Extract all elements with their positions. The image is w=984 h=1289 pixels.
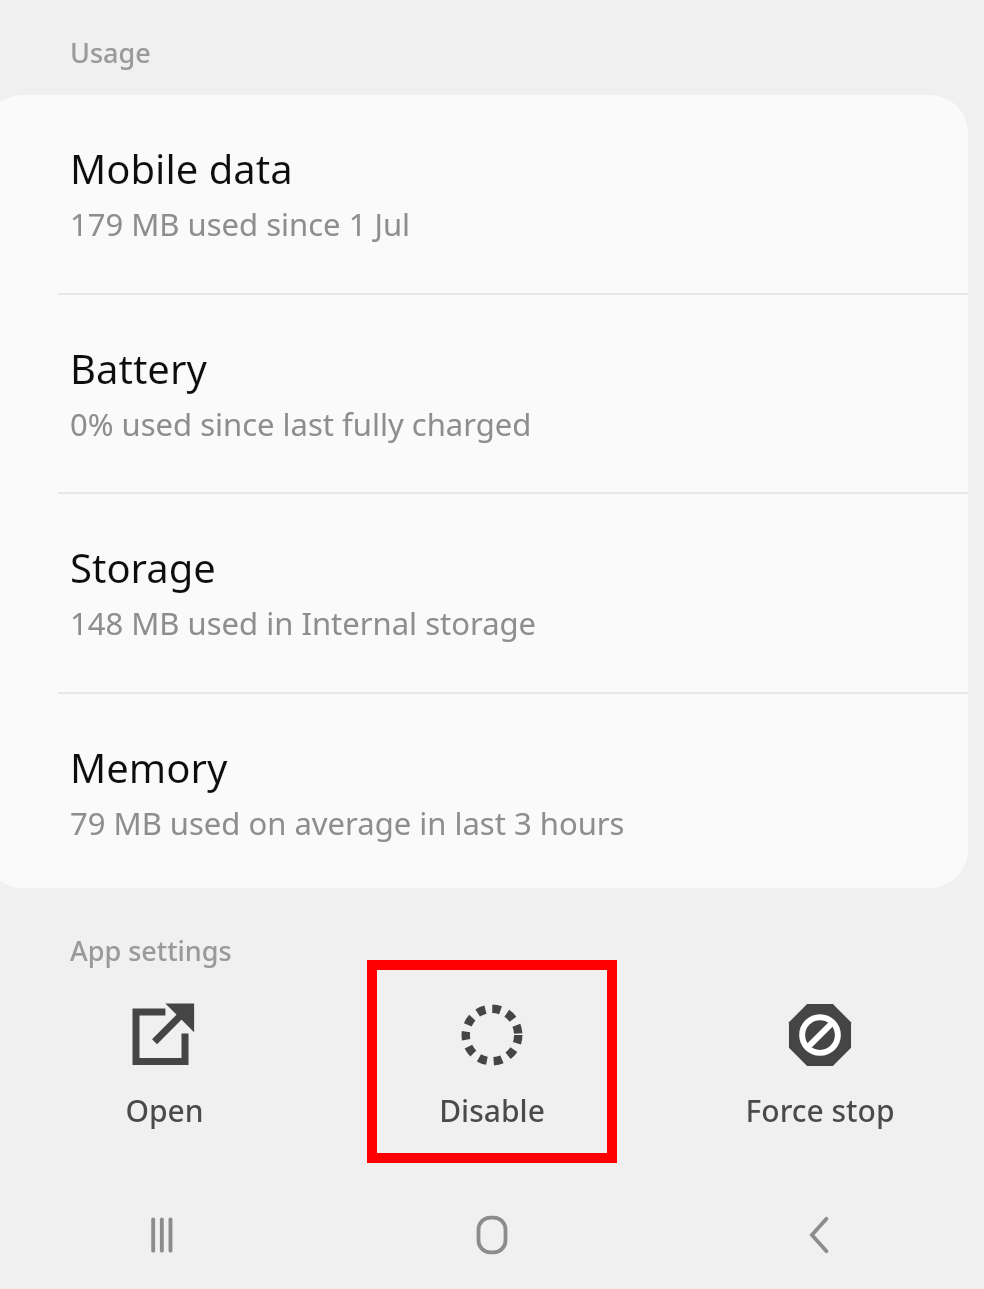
staticText: Memory	[70, 740, 228, 794]
staticText: Force stop	[745, 1090, 895, 1131]
staticText: Disable	[439, 1090, 545, 1131]
button[interactable]: Storage	[0, 540, 968, 692]
staticText: 79 MB used on average in last 3 hours	[70, 802, 625, 844]
button[interactable]: Back	[656, 1180, 984, 1289]
button[interactable]: Open	[0, 960, 328, 1163]
staticText: 148 MB used in Internal storage	[70, 602, 537, 644]
staticText: Mobile data	[70, 141, 293, 195]
other: Open	[129, 1000, 199, 1070]
staticText: Battery	[70, 341, 207, 395]
staticText: 0% used since last fully charged	[70, 403, 532, 445]
staticText: 179 MB used since 1 Jul	[70, 203, 411, 245]
button[interactable]: Home	[328, 1180, 656, 1289]
button[interactable]: Battery	[0, 341, 968, 493]
button[interactable]: Mobile data	[0, 141, 968, 293]
button[interactable]: Force stop	[656, 960, 984, 1163]
button[interactable]: Disable	[328, 960, 656, 1163]
staticText: Storage	[70, 540, 216, 594]
staticText: Usage	[70, 34, 151, 71]
button[interactable]: Recents	[0, 1180, 328, 1289]
other: Disable	[457, 1000, 527, 1070]
staticText: App settings	[70, 932, 232, 969]
staticText: Open	[125, 1090, 204, 1131]
button[interactable]: Memory	[0, 740, 968, 888]
other: Force stop	[785, 1000, 855, 1070]
